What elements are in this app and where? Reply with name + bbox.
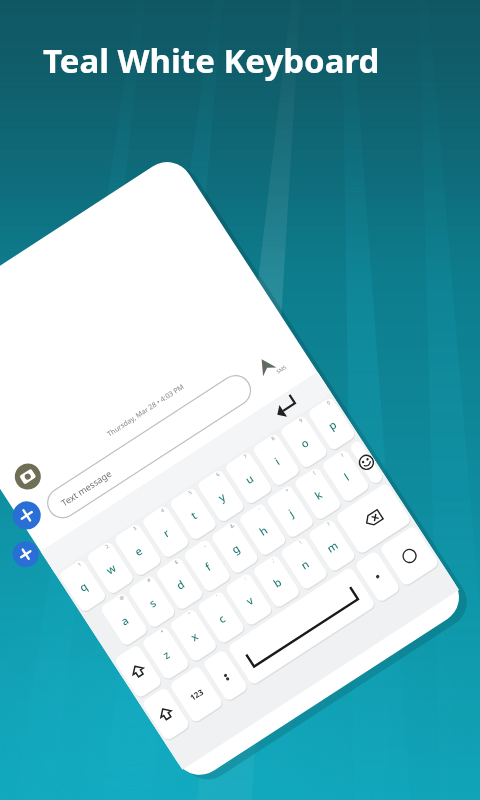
button[interactable]: Teal White Keyboard preview (0, 0, 480, 800)
